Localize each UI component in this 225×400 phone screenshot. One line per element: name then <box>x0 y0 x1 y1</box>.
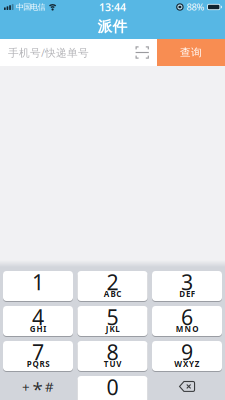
button[interactable] <box>152 376 222 400</box>
button[interactable]: 3 <box>152 271 222 302</box>
staticText: 查询 <box>180 46 202 59</box>
button[interactable]: 4 <box>3 306 73 337</box>
staticText: 手机号/快递单号 <box>8 45 89 60</box>
staticText: 中国电信 <box>16 2 45 12</box>
staticText: 0 <box>106 373 118 400</box>
staticText: + <box>22 378 30 395</box>
staticText: 1 <box>32 268 44 296</box>
staticText: * <box>32 377 42 400</box>
staticText: # <box>45 378 54 395</box>
button[interactable]: 2 <box>77 271 147 302</box>
button[interactable]: 6 <box>152 306 222 337</box>
staticText: DEF <box>179 289 195 299</box>
button[interactable]: 8 <box>77 341 147 372</box>
staticText: WXYZ <box>174 359 200 369</box>
staticText: 3 <box>181 268 193 296</box>
staticText: MNO <box>176 324 198 334</box>
button[interactable]: 9 <box>152 341 222 372</box>
button[interactable]: 0 <box>77 376 147 400</box>
staticText: JKL <box>106 324 119 334</box>
button[interactable]: 手机号/快递单号 <box>0 39 157 66</box>
staticText: ABC <box>104 289 121 299</box>
staticText: 派件 <box>97 17 127 35</box>
staticText <box>37 289 39 299</box>
staticText: 2 <box>106 268 118 296</box>
button[interactable]: 查询 <box>157 39 225 66</box>
button[interactable]: 7 <box>3 341 73 372</box>
staticText: 9 <box>181 338 193 366</box>
staticText: 5 <box>106 303 118 331</box>
staticText: TUV <box>104 359 121 369</box>
staticText: PQRS <box>27 359 49 369</box>
staticText: 6 <box>181 303 193 331</box>
staticText: 4 <box>32 303 44 331</box>
staticText: GHI <box>30 324 46 334</box>
button[interactable] <box>135 46 157 59</box>
button[interactable]: 1 <box>3 271 73 302</box>
staticText: 13:44 <box>99 0 126 14</box>
staticText: 7 <box>32 338 44 366</box>
staticText: 8 <box>106 338 118 366</box>
button[interactable]: 5 <box>77 306 147 337</box>
staticText: 88% <box>186 1 204 13</box>
button[interactable]: + <box>3 376 73 400</box>
